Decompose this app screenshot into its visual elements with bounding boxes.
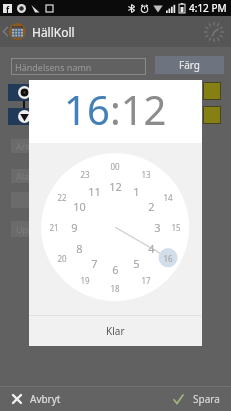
button[interactable] bbox=[8, 84, 56, 101]
staticText: Spara bbox=[193, 392, 220, 406]
button[interactable] bbox=[203, 106, 221, 124]
staticText: 15 bbox=[171, 222, 181, 233]
button[interactable]: Händelsens namn bbox=[11, 58, 146, 75]
staticText: Anteckningar bbox=[16, 140, 73, 152]
button[interactable]: Upprepa bbox=[11, 221, 151, 237]
button[interactable] bbox=[11, 192, 151, 208]
staticText: 22 bbox=[57, 192, 67, 203]
button[interactable]: Anteckningar bbox=[11, 139, 151, 153]
staticText: 20 bbox=[57, 253, 67, 264]
staticText: 14 bbox=[163, 192, 173, 203]
button[interactable]: Spara bbox=[162, 387, 231, 411]
button[interactable]: Alarm bbox=[11, 169, 151, 183]
button[interactable]: Färg bbox=[155, 56, 224, 74]
staticText: Upprepa bbox=[16, 223, 53, 235]
staticText: :12 bbox=[110, 82, 167, 136]
staticText: 5 bbox=[133, 256, 140, 270]
staticText: 11 bbox=[88, 184, 101, 198]
staticText: 16 bbox=[163, 253, 173, 264]
staticText: 6 bbox=[112, 262, 119, 276]
staticText: 4 bbox=[148, 241, 155, 255]
staticText: Alarm bbox=[16, 170, 42, 182]
staticText: 10 bbox=[73, 199, 86, 213]
staticText: 00 bbox=[110, 161, 120, 172]
button[interactable]: Klar bbox=[29, 316, 202, 346]
staticText: Avbryt bbox=[30, 392, 61, 406]
staticText: 4:12 PM bbox=[189, 1, 227, 15]
button[interactable] bbox=[8, 108, 56, 125]
staticText: 13 bbox=[141, 169, 151, 180]
staticText: Händelsens namn bbox=[15, 61, 92, 73]
staticText: 16 bbox=[64, 82, 110, 136]
staticText: 21 bbox=[49, 222, 59, 233]
button[interactable]: Navigate up bbox=[0, 21, 11, 42]
button[interactable]: Avbryt bbox=[8, 387, 116, 411]
staticText: HällKoll bbox=[32, 24, 75, 40]
staticText: 19 bbox=[80, 275, 90, 286]
staticText: 8 bbox=[76, 241, 83, 255]
staticText: 9 bbox=[71, 220, 78, 234]
staticText: 7 bbox=[91, 256, 98, 270]
staticText: 17 bbox=[141, 275, 151, 286]
staticText: 23 bbox=[80, 169, 90, 180]
staticText: 18 bbox=[110, 283, 120, 294]
staticText: 3 bbox=[154, 220, 161, 234]
staticText: f bbox=[6, 4, 10, 13]
staticText: 12 bbox=[109, 179, 122, 193]
staticText: Klar bbox=[106, 324, 125, 338]
button[interactable] bbox=[203, 82, 221, 100]
staticText: 1 bbox=[133, 184, 140, 198]
staticText: Färg bbox=[179, 58, 200, 72]
staticText: 2 bbox=[148, 199, 155, 213]
